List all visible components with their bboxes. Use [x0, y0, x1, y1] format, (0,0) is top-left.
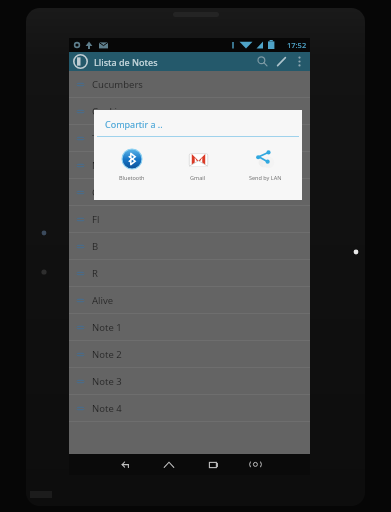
staticText: Tea [92, 132, 108, 145]
staticText: Send by LAN [249, 174, 282, 181]
button[interactable]: More options [291, 53, 308, 70]
staticText: Charles 988886667788 [92, 186, 194, 199]
button[interactable]: Cookies [69, 98, 310, 125]
button[interactable]: Cucumbers [69, 71, 310, 98]
staticText: Bluetooth [119, 174, 145, 181]
button[interactable]: Gmail [169, 146, 227, 183]
button[interactable]: Recent apps [198, 454, 228, 475]
staticText: B [92, 240, 99, 253]
button[interactable]: Up [73, 54, 88, 69]
button[interactable]: Fl [69, 206, 310, 233]
button[interactable]: Alive [69, 287, 310, 314]
staticText: Note 4 [92, 402, 122, 415]
staticText: Cookies [92, 105, 127, 118]
button[interactable]: Home [154, 454, 184, 475]
button[interactable]: R [69, 260, 310, 287]
button[interactable]: Bluetooth [103, 146, 161, 183]
button[interactable]: Send by LAN [236, 146, 294, 183]
staticText: Meeting for Google [92, 159, 179, 172]
button[interactable]: Note 2 [69, 341, 310, 368]
button[interactable]: Back [110, 454, 140, 475]
staticText: Cucumbers [92, 78, 143, 91]
staticText: Gmail [190, 174, 206, 181]
staticText: Note 1 [92, 321, 122, 334]
button[interactable]: Meeting for Google [69, 152, 310, 179]
staticText: 17:52 [287, 40, 307, 50]
staticText: Note 2 [92, 348, 122, 361]
button[interactable]: Edit [272, 52, 291, 71]
staticText: Llista de Notes [94, 56, 158, 68]
button[interactable]: Charles 988886667788 [69, 179, 310, 206]
staticText: Fl [92, 213, 100, 226]
staticText: R [92, 267, 98, 280]
button[interactable]: Screenshot [240, 454, 270, 475]
staticText: Compartir a .. [105, 118, 163, 130]
button[interactable]: Note 4 [69, 395, 310, 422]
button[interactable]: Tea [69, 125, 310, 152]
button[interactable]: B [69, 233, 310, 260]
button[interactable]: Note 1 [69, 314, 310, 341]
button[interactable]: Search [253, 52, 272, 71]
staticText: Alive [92, 294, 114, 307]
button[interactable]: Note 3 [69, 368, 310, 395]
staticText: Note 3 [92, 375, 122, 388]
